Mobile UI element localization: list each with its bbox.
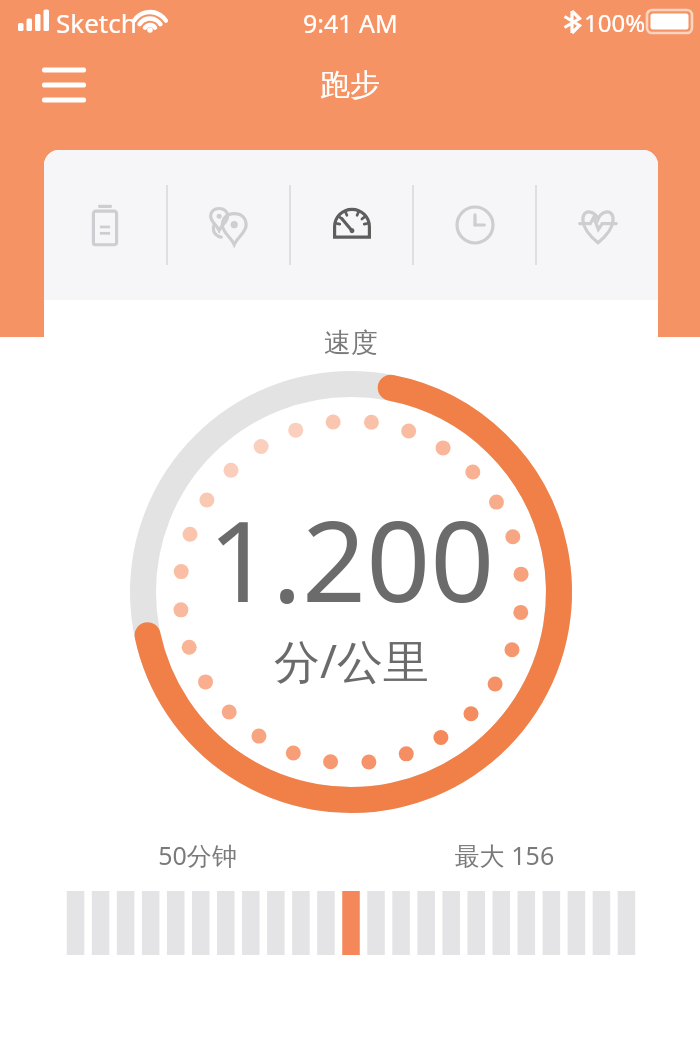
button[interactable]: Menu bbox=[36, 57, 92, 113]
button[interactable]: Time bbox=[414, 150, 535, 300]
staticText: 分/公里 bbox=[274, 629, 430, 692]
button[interactable]: Calories bbox=[44, 150, 166, 300]
staticText: 跑步 bbox=[320, 66, 380, 104]
button[interactable]: Speed bbox=[291, 150, 412, 300]
staticText: 速度 bbox=[44, 326, 658, 360]
staticText: 9:41 AM bbox=[303, 6, 398, 40]
staticText: Sketch bbox=[56, 5, 137, 40]
button[interactable]: Heart rate bbox=[537, 150, 658, 300]
staticText: 最大 156 bbox=[351, 838, 658, 872]
staticText: 100% bbox=[584, 6, 646, 39]
staticText: 50分钟 bbox=[44, 838, 351, 872]
staticText: 1.200 bbox=[208, 482, 495, 635]
button[interactable]: Route bbox=[168, 150, 289, 300]
